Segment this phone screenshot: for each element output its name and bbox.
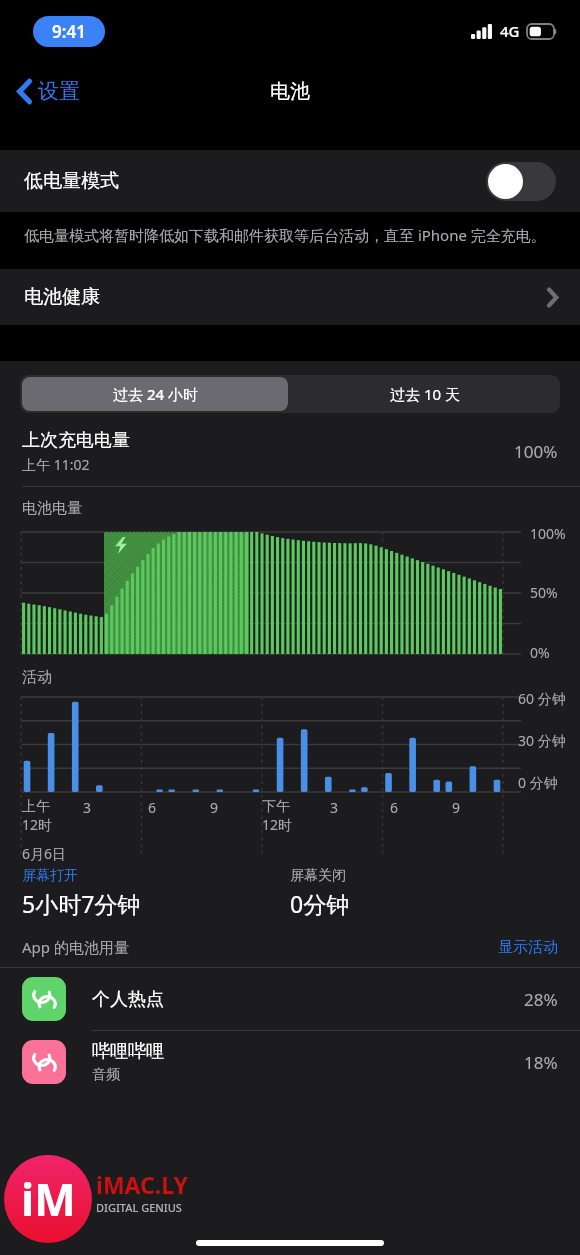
staticText: 3 [83, 798, 92, 817]
staticText: 设置 [38, 78, 80, 104]
staticText: 哔哩哔哩 [92, 1040, 164, 1063]
staticText: 显示活动 [498, 938, 558, 957]
staticText: 28% [524, 988, 558, 1011]
staticText: 9 [452, 798, 461, 817]
staticText: 100% [514, 440, 558, 463]
staticText: 6月6日 [22, 844, 67, 863]
staticText: 屏幕关闭 [290, 867, 346, 885]
staticText: 6 [390, 798, 399, 817]
staticText: 低电量模式将暂时降低如下载和邮件获取等后台活动，直至 iPhone 完全充电。 [24, 225, 546, 245]
staticText: 活动 [22, 668, 52, 687]
button[interactable]: 个人热点 [0, 968, 580, 1030]
staticText: 个人热点 [92, 988, 164, 1011]
button[interactable]: 过去 10 天 [290, 375, 560, 413]
button[interactable]: 哔哩哔哩 [0, 1031, 580, 1093]
staticText: 30 分钟 [518, 731, 566, 750]
staticText: 9:41 [52, 20, 86, 43]
staticText: 50% [530, 583, 558, 602]
staticText: 0 分钟 [518, 773, 558, 792]
button[interactable]: 显示活动 [498, 938, 558, 957]
staticText: iMAC.LY [96, 1169, 188, 1200]
staticText: 下午 12时 [262, 798, 293, 834]
staticText: 上次充电电量 [22, 429, 130, 452]
staticText: 4G [500, 21, 520, 41]
staticText: 100% [530, 524, 566, 543]
button[interactable]: 低电量模式 [0, 150, 580, 212]
button[interactable]: 设置 [10, 70, 88, 112]
staticText: 60 分钟 [518, 689, 566, 708]
staticText: 6 [148, 798, 157, 817]
button[interactable]: 低电量模式开关 [486, 162, 556, 201]
staticText: 音频 [92, 1066, 120, 1084]
staticText: 电池 [270, 79, 310, 104]
staticText: 电池电量 [22, 499, 82, 518]
staticText: iM [21, 1169, 76, 1229]
staticText: 9 [210, 798, 219, 817]
staticText: 5小时7分钟 [22, 888, 141, 919]
staticText: 电池健康 [24, 285, 100, 309]
button[interactable]: 过去 24 小时 [22, 377, 288, 411]
staticText: 上午 12时 [22, 798, 53, 834]
staticText: DIGITAL GENIUS [96, 1200, 182, 1215]
staticText: 低电量模式 [24, 169, 119, 193]
staticText: 屏幕打开 [22, 867, 78, 885]
staticText: 0% [530, 643, 550, 662]
staticText: 过去 10 天 [390, 384, 460, 404]
staticText: App 的电池用量 [22, 937, 129, 957]
staticText: 过去 24 小时 [113, 384, 198, 404]
button[interactable]: 上次充电电量 [0, 429, 580, 474]
staticText: 3 [330, 798, 339, 817]
staticText: 0分钟 [290, 888, 350, 919]
staticText: 上午 11:02 [22, 455, 90, 474]
staticText: 18% [524, 1051, 558, 1074]
button[interactable]: 电池健康 [0, 269, 580, 325]
